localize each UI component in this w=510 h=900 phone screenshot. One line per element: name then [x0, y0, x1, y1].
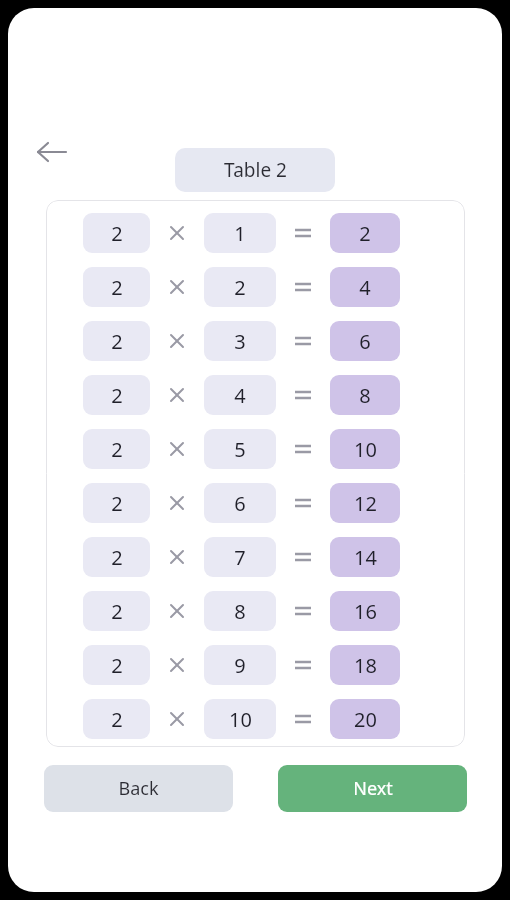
staticText: 18 — [354, 652, 377, 679]
staticText: Back — [118, 776, 159, 801]
staticText: 16 — [354, 598, 377, 625]
button[interactable]: 2 — [46, 375, 465, 415]
staticText: 3 — [234, 328, 246, 355]
staticText: 2 — [111, 652, 123, 679]
button[interactable]: 2 — [46, 699, 465, 739]
button[interactable]: 2 — [46, 267, 465, 307]
staticText: 2 — [111, 382, 123, 409]
staticText: 6 — [234, 490, 246, 517]
staticText: 14 — [354, 544, 377, 571]
staticText: 8 — [359, 382, 371, 409]
staticText: 20 — [354, 706, 377, 733]
button[interactable]: Next — [278, 765, 467, 812]
staticText: 5 — [234, 436, 246, 463]
staticText: 2 — [111, 544, 123, 571]
staticText: 8 — [234, 598, 246, 625]
button[interactable]: Back — [44, 765, 233, 812]
staticText: 2 — [111, 274, 123, 301]
staticText: 2 — [111, 490, 123, 517]
staticText: 9 — [234, 652, 246, 679]
staticText: 10 — [229, 706, 252, 733]
button[interactable]: 2 — [46, 645, 465, 685]
staticText: 2 — [111, 436, 123, 463]
staticText: 6 — [359, 328, 371, 355]
button[interactable]: 2 — [46, 537, 465, 577]
button[interactable]: Table 2 — [175, 148, 335, 192]
staticText: 10 — [354, 436, 377, 463]
button[interactable]: 2 — [46, 591, 465, 631]
staticText: 7 — [234, 544, 246, 571]
staticText: 2 — [111, 220, 123, 247]
staticText: 12 — [354, 490, 377, 517]
staticText: 2 — [359, 220, 371, 247]
staticText: 4 — [234, 382, 246, 409]
button[interactable]: Back — [30, 130, 74, 174]
staticText: Table 2 — [224, 157, 287, 183]
staticText: Next — [353, 776, 393, 801]
staticText: 1 — [234, 220, 246, 247]
button[interactable]: 2 — [46, 321, 465, 361]
button[interactable]: 2 — [46, 483, 465, 523]
staticText: 2 — [234, 274, 246, 301]
button[interactable]: 2 — [46, 429, 465, 469]
button[interactable]: 2 — [46, 213, 465, 253]
staticText: 2 — [111, 706, 123, 733]
staticText: 2 — [111, 598, 123, 625]
staticText: 2 — [111, 328, 123, 355]
staticText: 4 — [359, 274, 371, 301]
